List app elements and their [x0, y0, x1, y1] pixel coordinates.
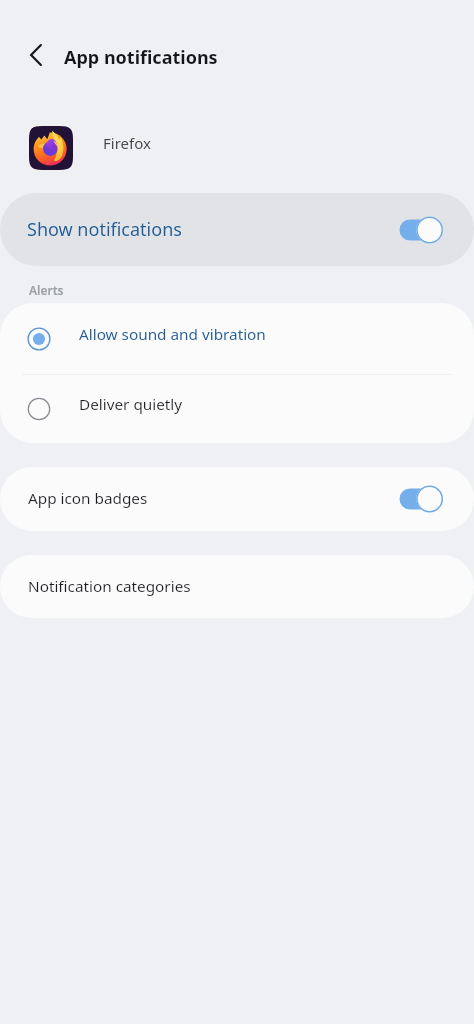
staticText: Allow sound and vibration — [79, 324, 266, 345]
button[interactable]: App icon badges — [0, 467, 474, 531]
staticText: Deliver quietly — [79, 394, 183, 415]
button[interactable]: Deliver quietly — [0, 375, 474, 443]
staticText: Notification categories — [28, 576, 191, 597]
button[interactable]: Allow sound and vibration — [0, 303, 474, 374]
staticText: Alerts — [29, 282, 64, 298]
button[interactable]: Back — [17, 38, 53, 74]
button[interactable]: Show notifications — [0, 193, 474, 266]
staticText: Show notifications — [27, 217, 182, 242]
staticText: Firefox — [103, 133, 151, 153]
button[interactable]: Notification categories — [0, 555, 474, 618]
staticText: App icon badges — [28, 488, 148, 509]
staticText: App notifications — [64, 45, 218, 70]
